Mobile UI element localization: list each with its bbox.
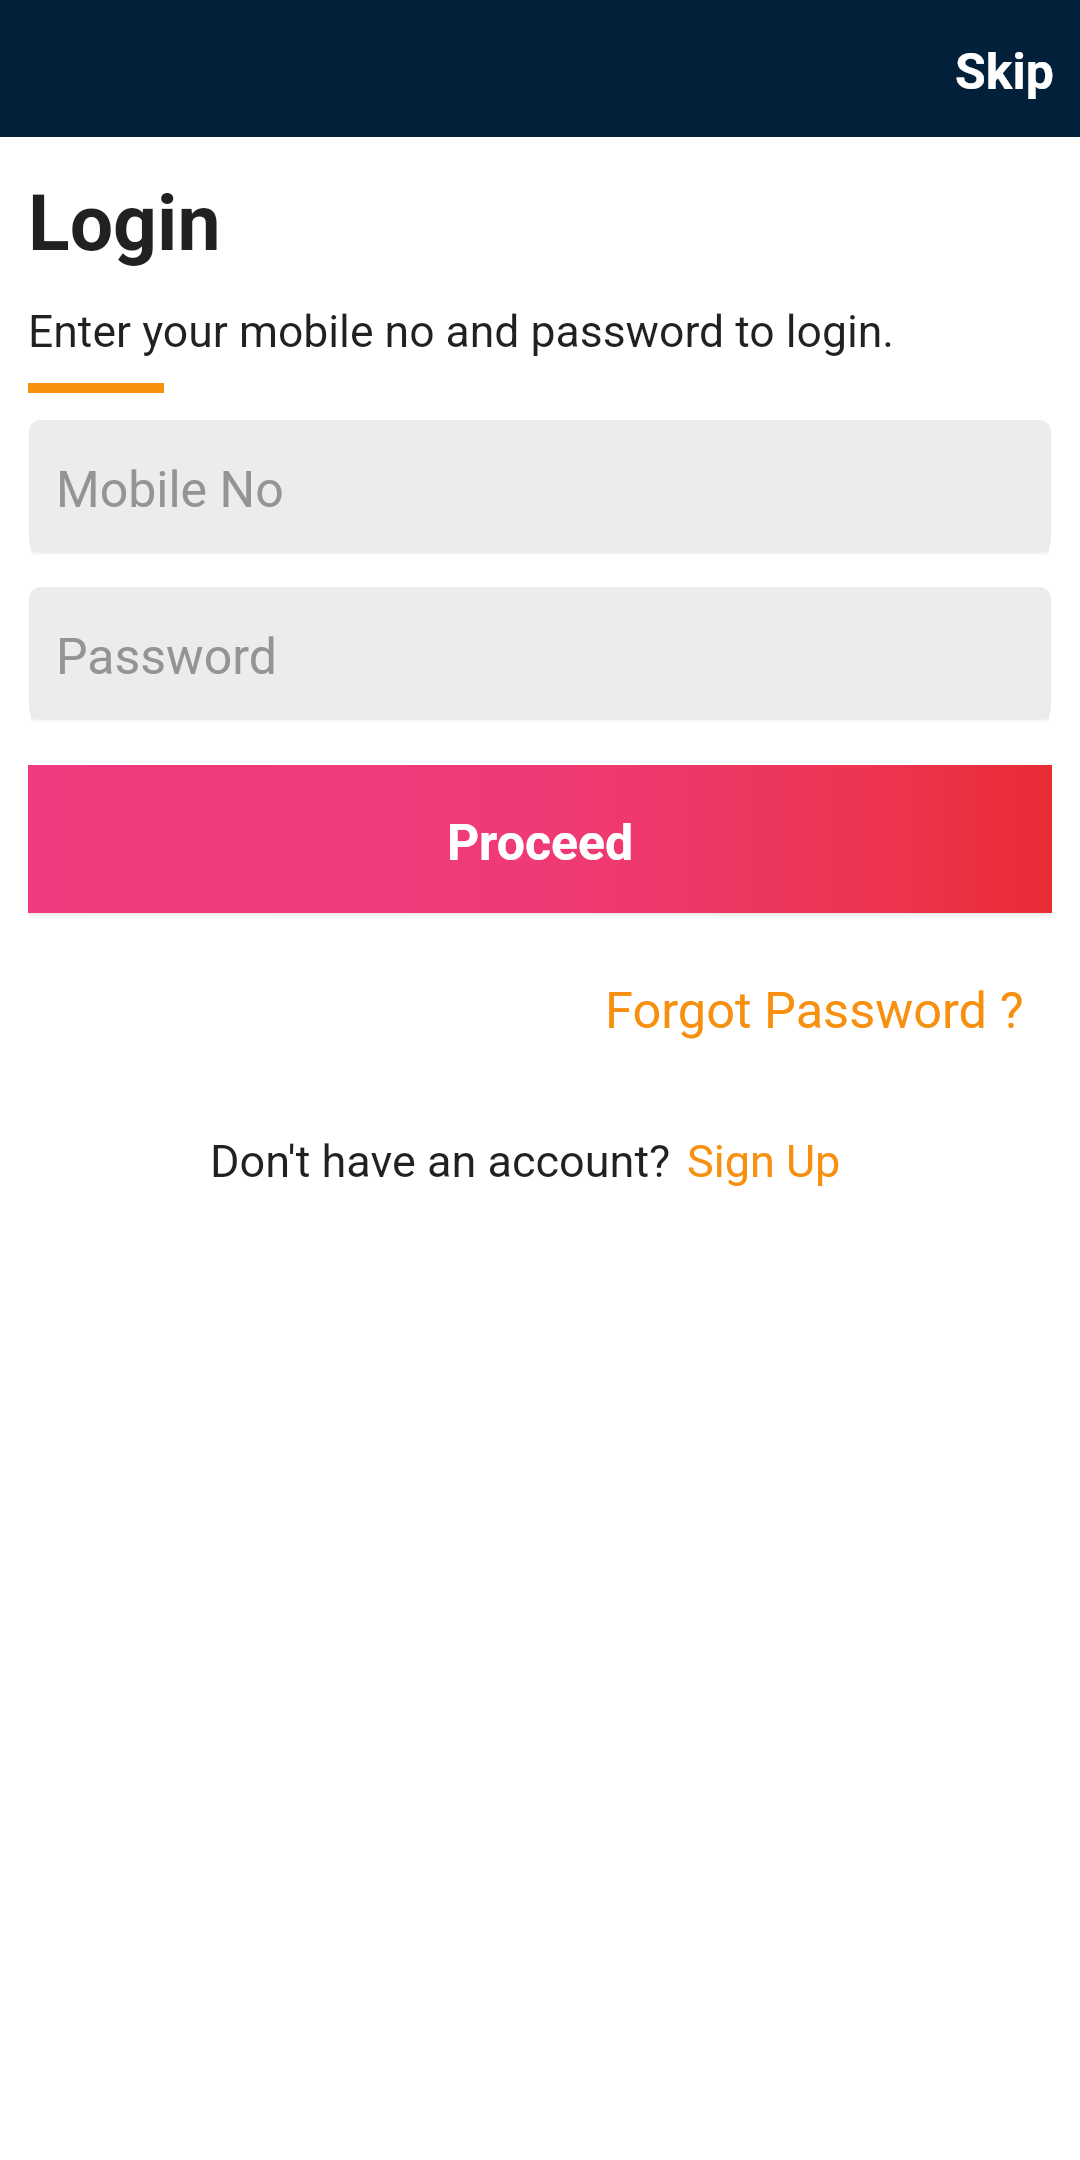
staticText: Proceed xyxy=(28,814,1052,873)
staticText: Mobile No xyxy=(56,461,284,520)
button[interactable]: Forgot Password ? xyxy=(578,955,1051,1055)
staticText: Forgot Password ? xyxy=(605,981,1024,1040)
staticText: Skip xyxy=(955,43,1054,102)
staticText: Password xyxy=(56,628,277,687)
staticText: Don't have an account? xyxy=(210,1135,682,1188)
button[interactable]: Proceed xyxy=(28,765,1052,913)
button[interactable]: Sign Up xyxy=(687,1125,853,1201)
button[interactable]: Mobile No xyxy=(29,420,1051,553)
button[interactable]: Password xyxy=(29,587,1051,720)
button[interactable]: Skip xyxy=(926,14,1080,124)
staticText: Sign Up xyxy=(687,1135,841,1188)
staticText: Enter your mobile no and password to log… xyxy=(28,306,895,358)
staticText: Login xyxy=(28,179,221,269)
